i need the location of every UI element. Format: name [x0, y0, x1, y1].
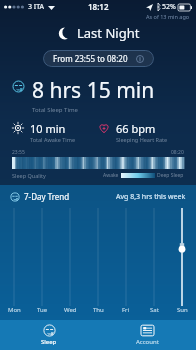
staticText: Sat — [150, 306, 159, 314]
staticText: 08:20 — [171, 149, 184, 156]
staticText: Awake — [103, 172, 119, 179]
staticText: Account — [136, 338, 159, 346]
staticText: Total Awake Time — [30, 136, 76, 143]
staticText: Sleep Quality — [12, 172, 46, 179]
staticText: Mon — [8, 306, 21, 314]
staticText: Deep Sleep — [157, 172, 184, 179]
staticText: 8 hrs 15 min — [32, 76, 155, 105]
staticText: Sun — [177, 306, 188, 314]
staticText: 18:12 — [88, 1, 109, 12]
staticText: Fri — [122, 306, 130, 314]
staticText: From 23:55 to 08:20 — [53, 53, 128, 64]
staticText: Tue — [37, 306, 48, 314]
button[interactable]: Account — [98, 320, 196, 350]
staticText: 52% — [162, 2, 176, 12]
staticText: Total Sleep Time — [32, 106, 78, 114]
staticText: Thu — [93, 306, 104, 314]
staticText: Sleeping Heart Rate — [116, 136, 168, 143]
staticText: Wed — [64, 306, 77, 314]
staticText: 23:55 — [12, 149, 25, 156]
staticText: 66 bpm — [116, 121, 156, 136]
button[interactable]: Sleep — [0, 320, 98, 350]
staticText: As of 13 min ago — [146, 13, 190, 20]
staticText: 7-Day Trend — [24, 191, 70, 202]
staticText: 10 min — [30, 121, 66, 136]
staticText: Sleep — [41, 338, 57, 346]
staticText: Last Night — [77, 24, 140, 42]
staticText: 3 ITA — [28, 2, 45, 12]
button[interactable]: From 23:55 to 08:20 — [43, 50, 154, 67]
staticText: Avg 8,3 hrs this week — [116, 192, 186, 202]
